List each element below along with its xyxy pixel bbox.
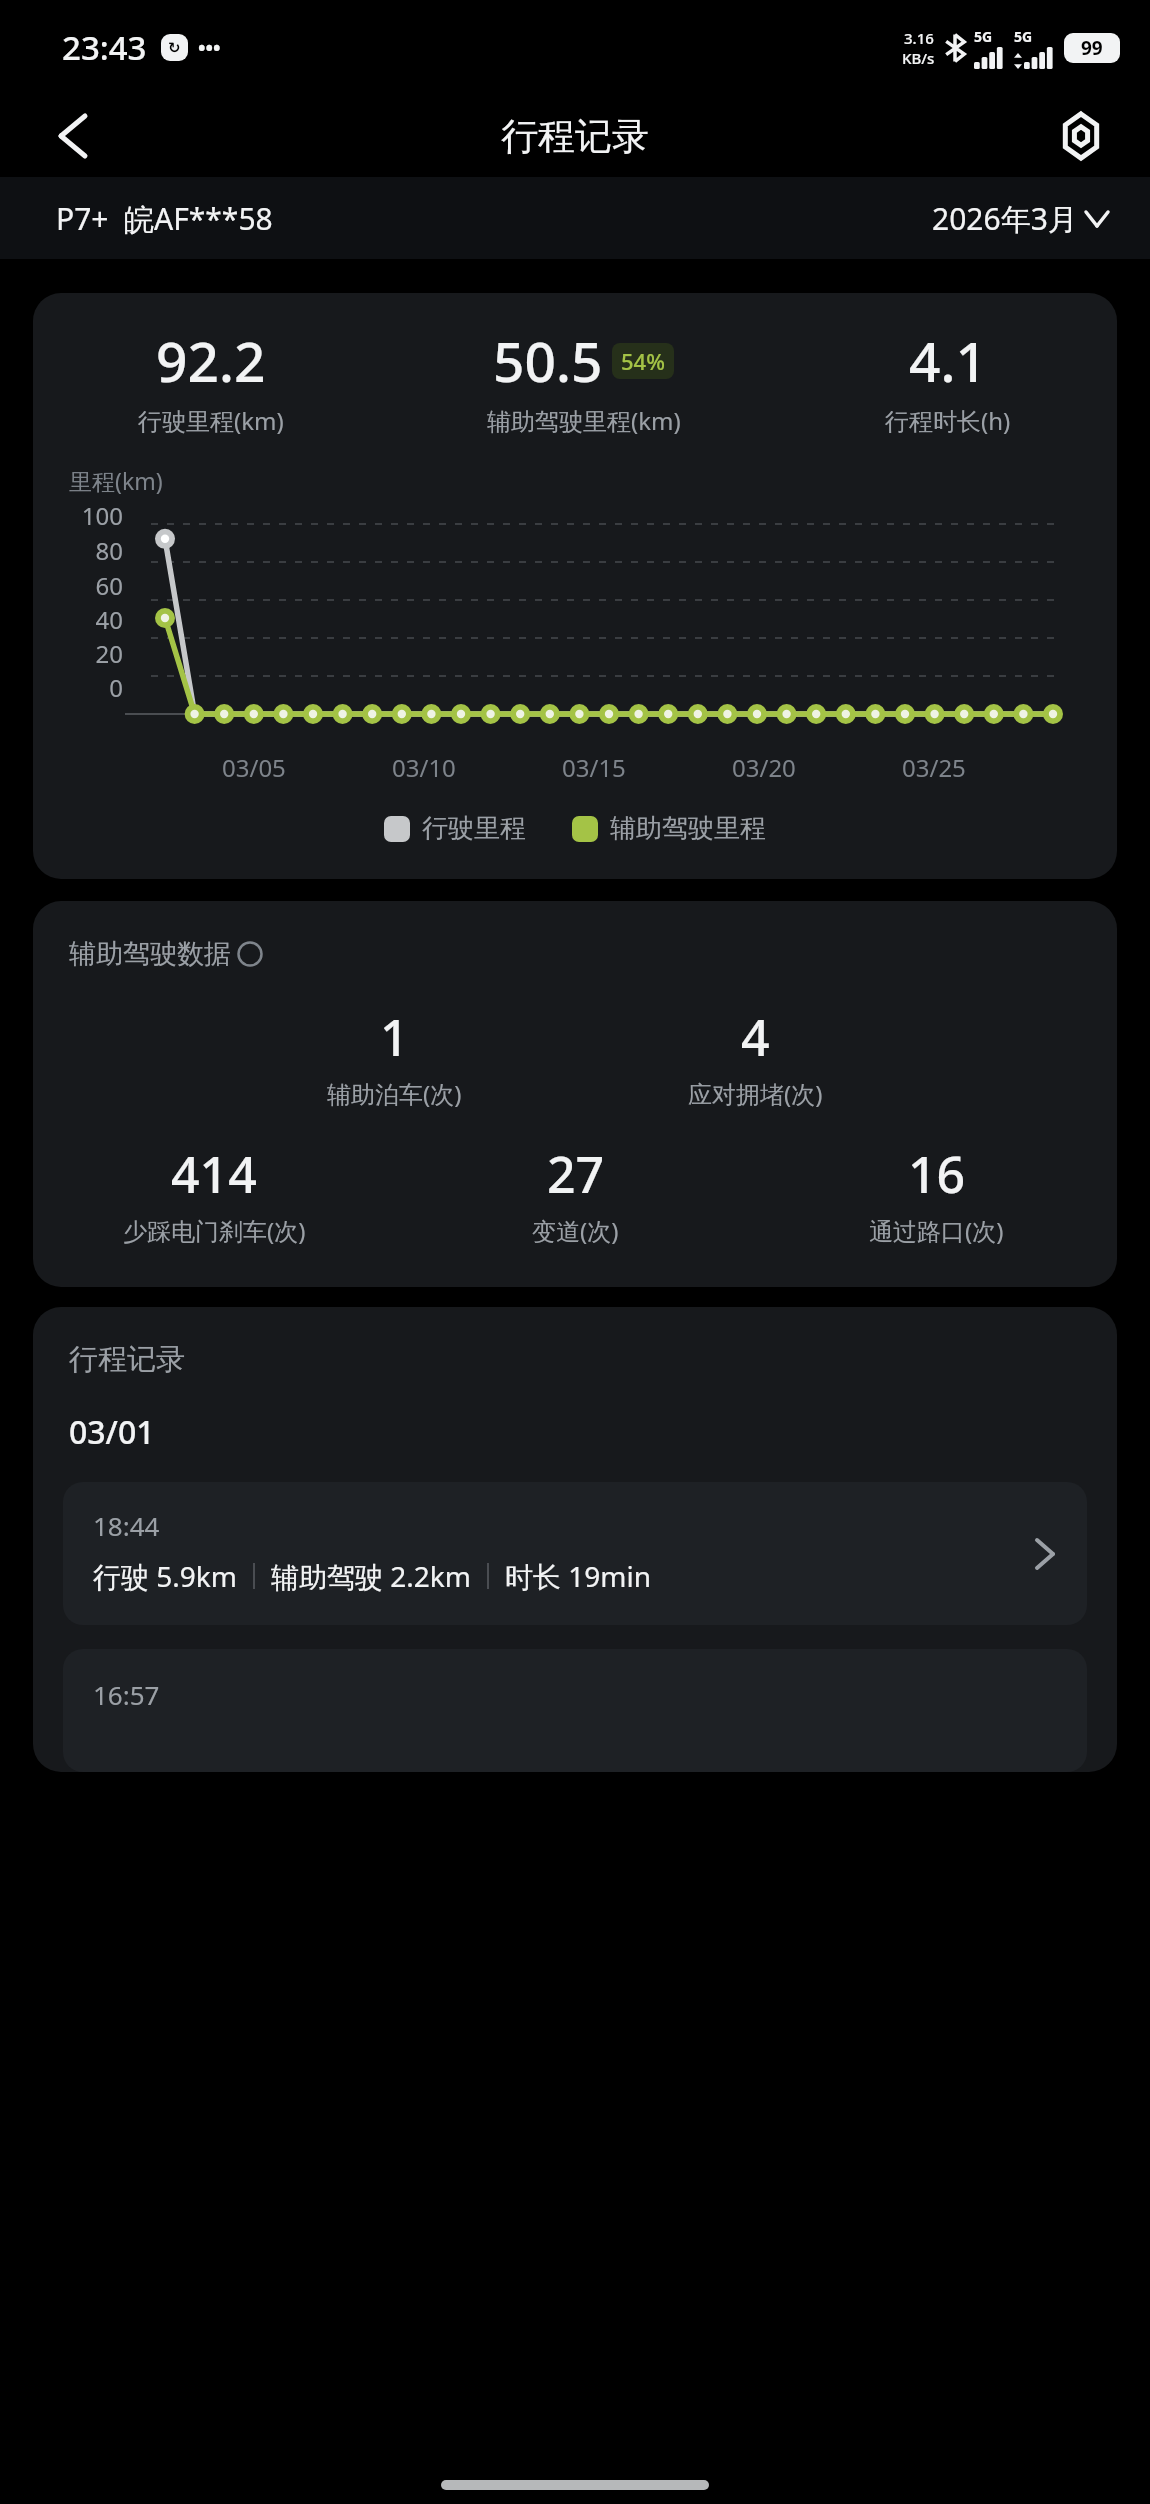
staticText: 40 — [51, 603, 123, 636]
button[interactable]: 2026年3月 — [932, 198, 1108, 239]
staticText: 行程记录 — [501, 113, 649, 160]
staticText: KB/s — [902, 48, 935, 68]
staticText: 辅助驾驶里程 — [610, 812, 766, 845]
staticText: 03/10 — [392, 751, 456, 784]
staticText: 0 — [51, 671, 123, 704]
button[interactable]: 辅助驾驶数据 — [69, 937, 263, 971]
staticText: 99 — [1081, 35, 1103, 61]
staticText: 23:43 — [62, 25, 147, 70]
staticText: 辅助驾驶数据 — [69, 937, 231, 971]
staticText: ••• — [198, 34, 221, 61]
staticText: 里程(km) — [69, 465, 163, 496]
staticText: 03/20 — [732, 751, 796, 784]
button[interactable]: 18:44 — [63, 1482, 1087, 1625]
staticText: 4 — [741, 1003, 770, 1071]
staticText: 92.2 — [156, 323, 266, 398]
staticText: 414 — [171, 1140, 257, 1208]
staticText: 18:44 — [93, 1508, 160, 1543]
staticText: 20 — [51, 637, 123, 670]
staticText: 60 — [51, 569, 123, 602]
staticText: 行程时长(h) — [885, 404, 1011, 437]
staticText: 27 — [547, 1140, 605, 1208]
staticText: 03/15 — [562, 751, 626, 784]
staticText: 辅助驾驶 2.2km — [271, 1557, 471, 1595]
button[interactable]: 16:57 — [63, 1649, 1087, 1772]
staticText: 54% — [621, 346, 665, 376]
button[interactable]: Back — [40, 103, 106, 169]
button[interactable]: Settings — [1048, 103, 1114, 169]
staticText: 辅助驾驶里程(km) — [487, 404, 681, 437]
staticText: 03/01 — [69, 1410, 155, 1454]
staticText: 4.1 — [909, 323, 987, 398]
staticText: 辅助泊车(次) — [327, 1077, 462, 1110]
staticText: P7+ 皖AF***58 — [56, 198, 273, 239]
staticText: 100 — [51, 499, 123, 532]
staticText: 2026年3月 — [932, 198, 1078, 239]
staticText: ↻ — [168, 39, 181, 56]
staticText: 16 — [908, 1140, 966, 1208]
staticText: 行驶里程(km) — [138, 404, 284, 437]
staticText: 16:57 — [93, 1677, 160, 1712]
staticText: 通过路口(次) — [869, 1214, 1004, 1247]
staticText: 5G — [974, 27, 993, 46]
staticText: 行驶里程 — [422, 812, 526, 845]
staticText: 应对拥堵(次) — [688, 1077, 823, 1110]
staticText: 3.16 — [904, 28, 934, 48]
staticText: 行程记录 — [69, 1341, 185, 1378]
staticText: 80 — [51, 534, 123, 567]
staticText: 03/05 — [222, 751, 286, 784]
staticText: 03/25 — [902, 751, 966, 784]
staticText: 1 — [380, 1003, 409, 1071]
staticText: 5G — [1014, 27, 1033, 46]
staticText: 50.5 — [493, 323, 603, 398]
staticText: 变道(次) — [532, 1214, 619, 1247]
staticText: 行驶 5.9km — [93, 1557, 237, 1595]
staticText: 时长 19min — [505, 1557, 652, 1595]
staticText: 少踩电门刹车(次) — [123, 1214, 306, 1247]
